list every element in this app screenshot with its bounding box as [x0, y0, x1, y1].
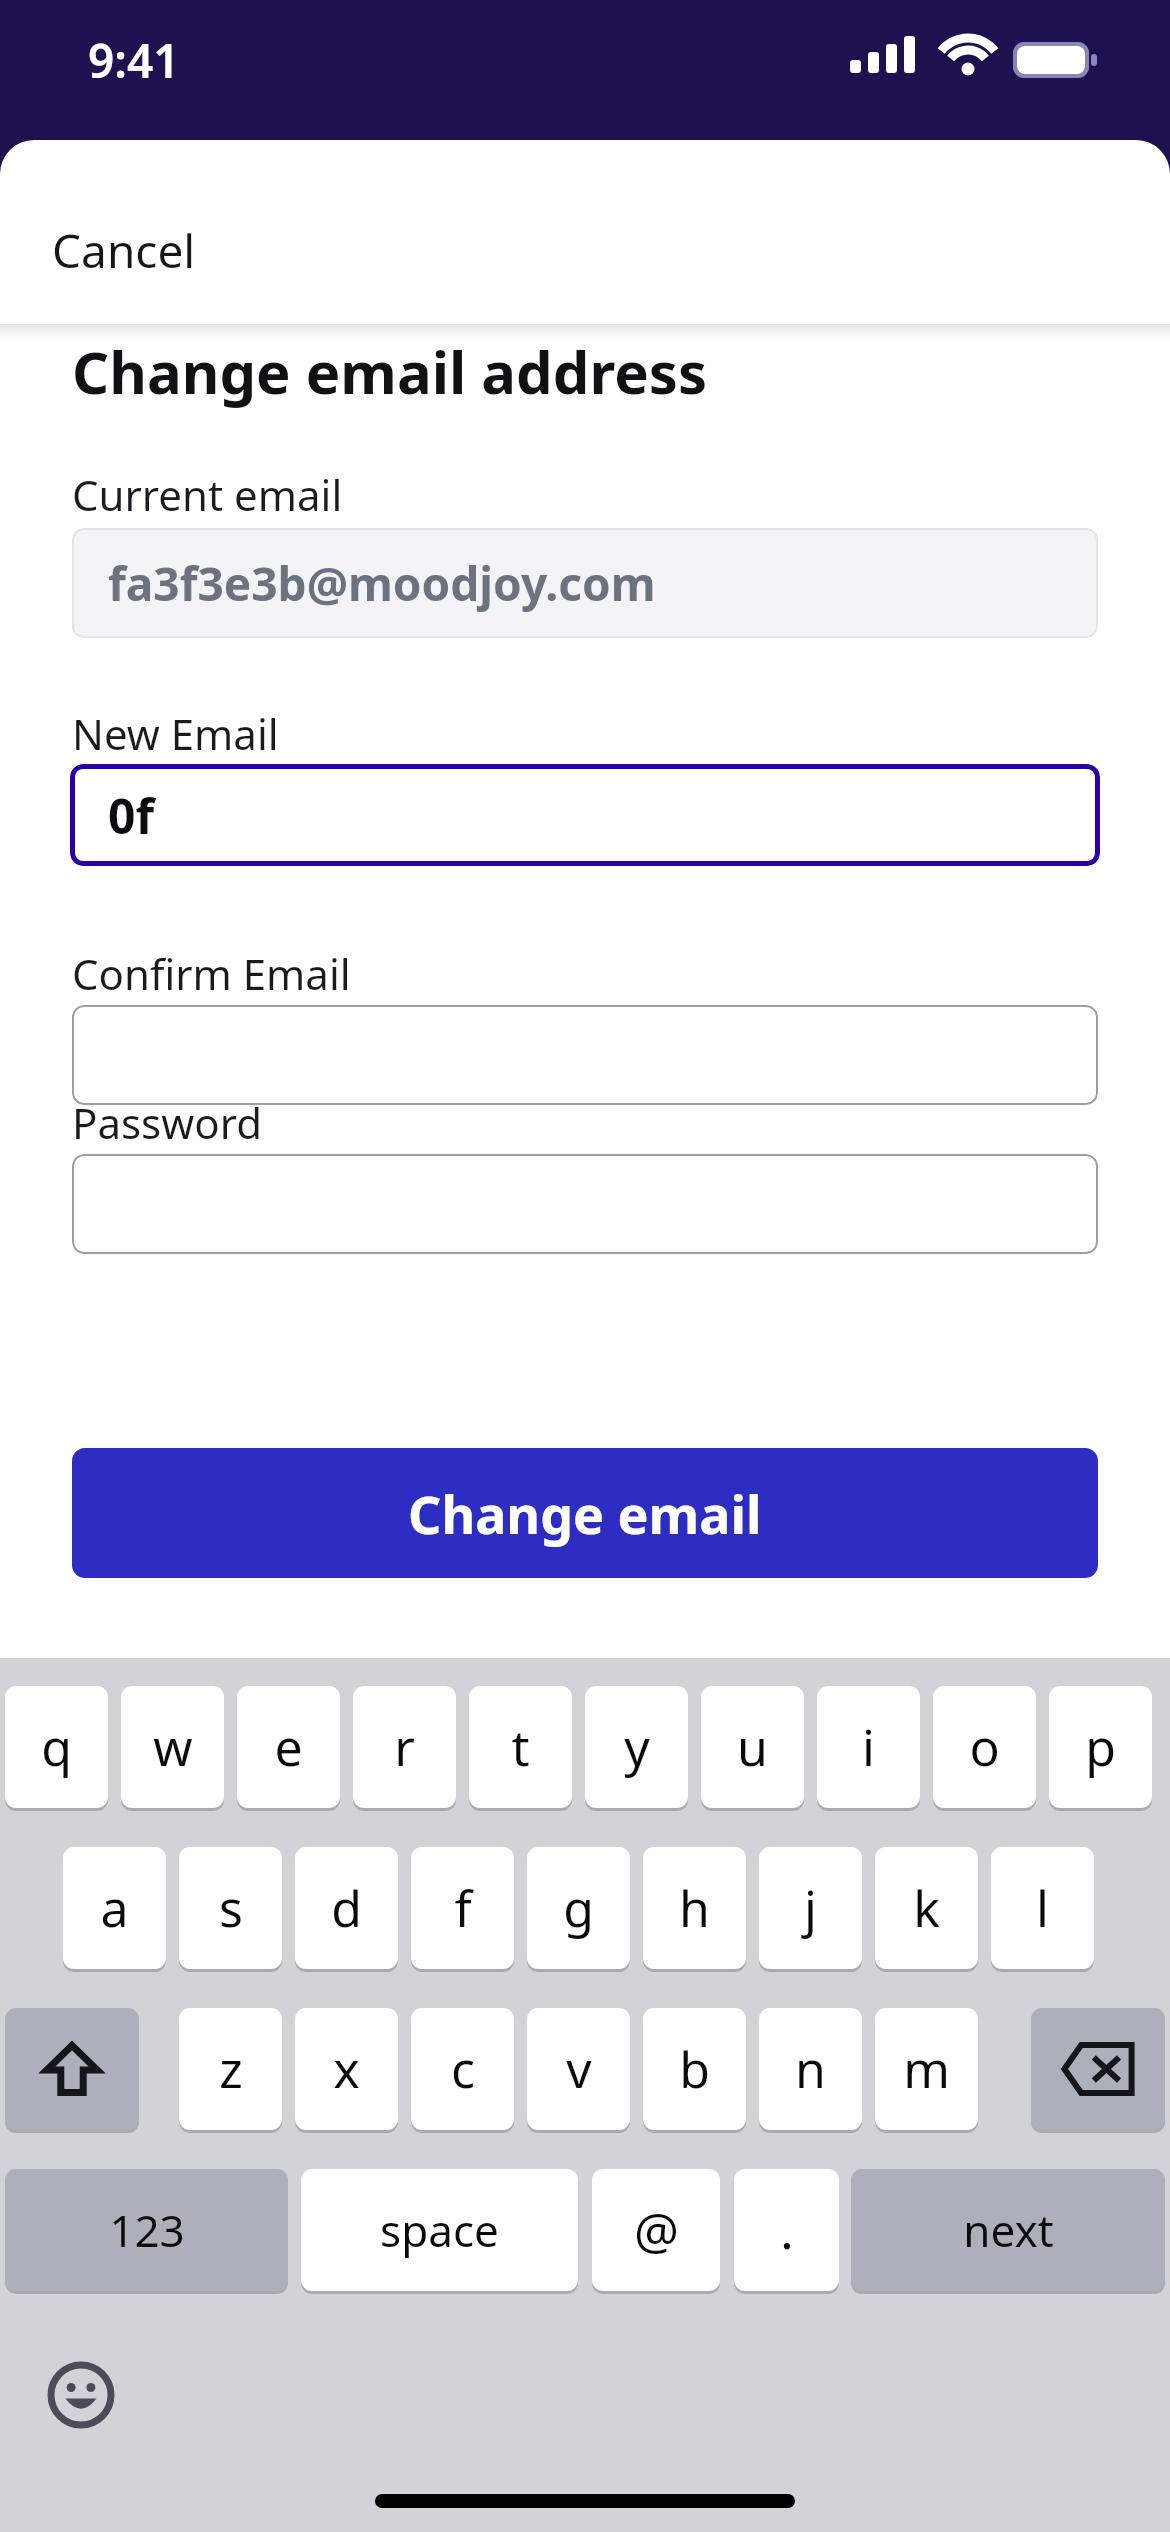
staticText: c — [451, 2035, 475, 2103]
staticText: i — [862, 1713, 875, 1781]
button[interactable]: . — [734, 2169, 839, 2291]
button[interactable]: space — [301, 2169, 578, 2291]
button[interactable]: fa3f3e3b@moodjoy.com — [72, 528, 1098, 638]
staticText: Password — [72, 1094, 262, 1151]
staticText: 123 — [109, 2200, 185, 2260]
button[interactable]: w — [121, 1686, 224, 1808]
button[interactable]: s — [179, 1847, 282, 1969]
button[interactable]: r — [353, 1686, 456, 1808]
staticText: z — [219, 2035, 243, 2103]
staticText: s — [219, 1874, 243, 1942]
button[interactable]: next — [851, 2169, 1165, 2291]
button[interactable]: Shift — [5, 2008, 139, 2130]
button[interactable]: q — [5, 1686, 108, 1808]
button[interactable]: d — [295, 1847, 398, 1969]
button[interactable]: o — [933, 1686, 1036, 1808]
staticText: Change email — [408, 1478, 762, 1549]
staticText: New Email — [72, 705, 279, 762]
staticText: b — [679, 2035, 710, 2103]
staticText: Change email address — [72, 332, 708, 411]
staticText: h — [679, 1874, 710, 1942]
button[interactable]: t — [469, 1686, 572, 1808]
button[interactable]: Backspace — [1031, 2008, 1165, 2130]
button[interactable] — [72, 1005, 1098, 1105]
staticText: 9:41 — [88, 29, 180, 92]
button[interactable]: a — [63, 1847, 166, 1969]
staticText: g — [563, 1874, 594, 1942]
staticText: fa3f3e3b@moodjoy.com — [108, 552, 656, 615]
button[interactable]: b — [643, 2008, 746, 2130]
staticText: . — [780, 2196, 794, 2264]
button[interactable]: 0f — [70, 764, 1100, 866]
button[interactable]: l — [991, 1847, 1094, 1969]
button[interactable]: k — [875, 1847, 978, 1969]
button[interactable]: Emoji — [48, 2362, 114, 2428]
staticText: n — [795, 2035, 826, 2103]
staticText: next — [963, 2200, 1054, 2260]
staticText: @ — [634, 2196, 679, 2264]
button[interactable]: 123 — [5, 2169, 288, 2291]
button[interactable]: z — [179, 2008, 282, 2130]
staticText: o — [969, 1713, 1000, 1781]
staticText: w — [153, 1713, 193, 1781]
staticText: v — [566, 2035, 592, 2103]
button[interactable]: y — [585, 1686, 688, 1808]
staticText: 0f — [108, 783, 155, 848]
staticText: k — [913, 1874, 940, 1942]
button[interactable]: g — [527, 1847, 630, 1969]
button[interactable]: p — [1049, 1686, 1152, 1808]
staticText: x — [333, 2035, 360, 2103]
staticText: q — [41, 1713, 72, 1781]
staticText: d — [331, 1874, 362, 1942]
staticText: t — [511, 1713, 530, 1781]
staticText: Confirm Email — [72, 945, 351, 1002]
staticText: l — [1036, 1874, 1049, 1942]
button[interactable]: u — [701, 1686, 804, 1808]
staticText: r — [394, 1713, 415, 1781]
button[interactable]: n — [759, 2008, 862, 2130]
staticText: a — [100, 1874, 129, 1942]
staticText: Current email — [72, 466, 343, 523]
staticText: j — [804, 1874, 817, 1942]
button[interactable]: Change email — [72, 1448, 1098, 1578]
button[interactable]: m — [875, 2008, 978, 2130]
staticText: f — [454, 1874, 472, 1942]
staticText: y — [624, 1713, 650, 1781]
button[interactable]: i — [817, 1686, 920, 1808]
button[interactable]: f — [411, 1847, 514, 1969]
button[interactable]: c — [411, 2008, 514, 2130]
button[interactable]: j — [759, 1847, 862, 1969]
button[interactable]: v — [527, 2008, 630, 2130]
staticText: p — [1085, 1713, 1116, 1781]
button[interactable]: x — [295, 2008, 398, 2130]
staticText: u — [737, 1713, 768, 1781]
staticText: space — [380, 2200, 499, 2260]
button[interactable] — [72, 1154, 1098, 1254]
staticText: m — [903, 2035, 950, 2103]
button[interactable]: h — [643, 1847, 746, 1969]
staticText: Cancel — [52, 219, 196, 282]
staticText: e — [274, 1713, 303, 1781]
button[interactable]: e — [237, 1686, 340, 1808]
button[interactable]: Cancel — [0, 190, 300, 310]
button[interactable]: @ — [592, 2169, 720, 2291]
